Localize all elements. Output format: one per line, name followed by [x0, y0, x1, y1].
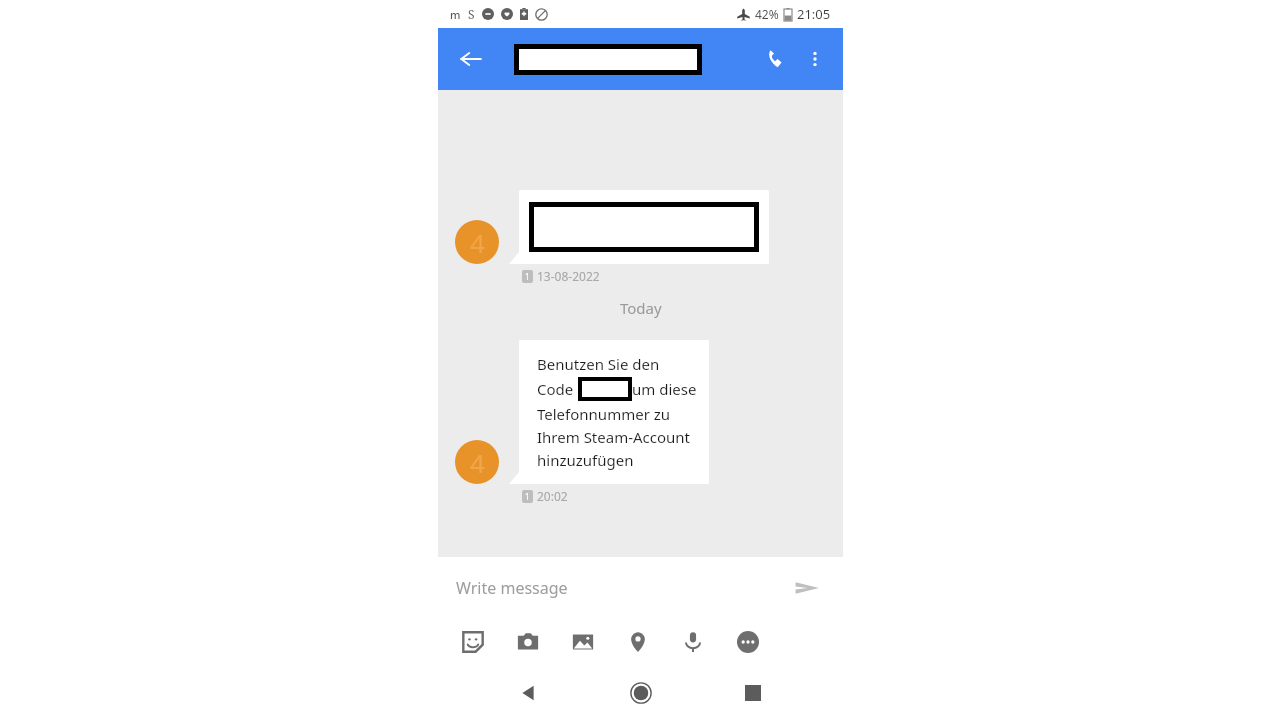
button[interactable]: More options: [795, 39, 835, 79]
button[interactable]: Send: [787, 568, 827, 608]
button[interactable]: Write message: [456, 568, 776, 608]
staticText: Telefonnummer zu: [537, 404, 671, 424]
staticText: Code: [537, 379, 574, 399]
button[interactable]: Gallery: [568, 627, 598, 657]
staticText: hinzuzufügen: [537, 450, 634, 470]
button[interactable]: Home: [621, 673, 661, 713]
staticText: 1: [525, 491, 530, 502]
staticText: Ihrem Steam-Account: [537, 427, 691, 447]
staticText: m: [450, 7, 461, 22]
button[interactable]: Stickers: [458, 627, 488, 657]
button[interactable]: More: [733, 627, 763, 657]
button[interactable]: Voice message: [678, 627, 708, 657]
button[interactable]: Call: [755, 39, 795, 79]
button[interactable]: Location: [623, 627, 653, 657]
staticText: S: [468, 6, 475, 22]
staticText: 4: [470, 225, 485, 260]
staticText: 1: [525, 271, 530, 282]
staticText: 42%: [755, 6, 779, 22]
staticText: Benutzen Sie den: [537, 354, 660, 374]
button[interactable]: Back: [454, 42, 488, 76]
staticText: 4: [470, 445, 485, 480]
button[interactable]: Camera: [513, 627, 543, 657]
staticText: Write message: [456, 577, 568, 599]
staticText: 20:02: [537, 488, 568, 504]
button[interactable]: Back: [508, 673, 548, 713]
staticText: 21:05: [797, 5, 831, 23]
button[interactable]: Recent apps: [733, 673, 773, 713]
staticText: Today: [620, 298, 662, 318]
staticText: 13-08-2022: [537, 268, 600, 284]
staticText: um diese: [632, 379, 697, 399]
